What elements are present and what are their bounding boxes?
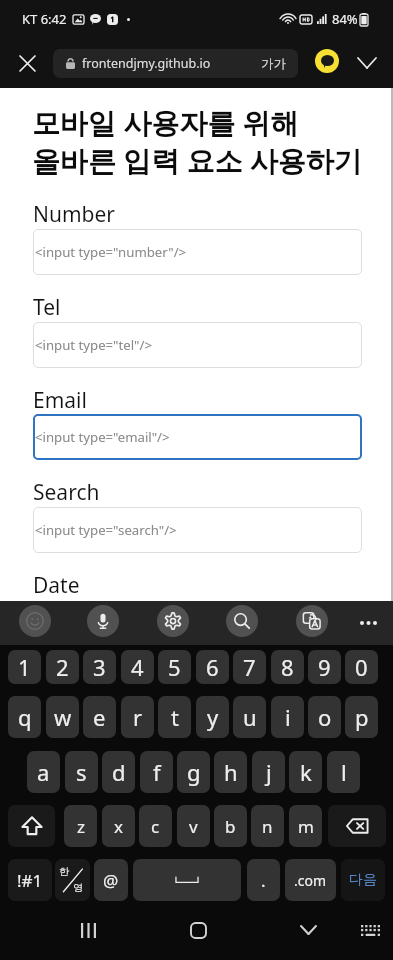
button[interactable]: g <box>177 751 210 793</box>
staticText: 4 <box>131 652 144 682</box>
button[interactable]: 6 <box>196 650 229 684</box>
button[interactable]: z <box>64 805 97 847</box>
staticText: 5 <box>168 652 181 682</box>
button[interactable]: Close <box>11 47 43 79</box>
button[interactable]: f <box>140 751 173 793</box>
button[interactable]: Search <box>226 605 258 637</box>
staticText: j <box>266 757 272 787</box>
staticText: z <box>77 815 85 838</box>
button[interactable]: Korean English toggle <box>55 859 90 901</box>
button[interactable]: s <box>65 751 98 793</box>
button[interactable]: 3 <box>83 650 116 684</box>
button[interactable]: v <box>177 805 210 847</box>
staticText: 8 <box>281 652 294 682</box>
staticText: KT 6:42 <box>22 10 67 28</box>
button[interactable]: o <box>308 696 341 738</box>
button[interactable]: Home <box>176 908 220 952</box>
button[interactable]: frontendjmy.github.io <box>53 49 298 78</box>
staticText: g <box>187 757 201 787</box>
staticText: !#1 <box>17 869 43 892</box>
button[interactable]: Recent apps <box>66 908 110 952</box>
staticText: . <box>261 869 266 892</box>
staticText: y <box>207 702 219 732</box>
staticText: <input type="search"/> <box>35 521 177 539</box>
staticText: i <box>285 702 291 732</box>
button[interactable]: q <box>8 696 41 738</box>
button[interactable]: c <box>139 805 172 847</box>
button[interactable]: 7 <box>233 650 266 684</box>
button[interactable]: l <box>327 751 360 793</box>
button[interactable]: @ <box>94 859 128 901</box>
staticText: l <box>341 757 347 787</box>
button[interactable]: j <box>252 751 285 793</box>
staticText: f <box>153 757 161 787</box>
button[interactable]: Emoji <box>19 605 51 637</box>
staticText: h <box>224 757 238 787</box>
button[interactable]: u <box>233 696 266 738</box>
button[interactable]: Chat <box>315 49 339 73</box>
staticText: t <box>171 702 179 732</box>
button[interactable]: w <box>46 696 79 738</box>
staticText: r <box>133 702 143 732</box>
button[interactable]: a <box>27 751 60 793</box>
button[interactable]: x <box>102 805 135 847</box>
button[interactable]: e <box>83 696 116 738</box>
button[interactable]: k <box>289 751 322 793</box>
button[interactable]: 9 <box>308 650 341 684</box>
button[interactable]: Voice input <box>87 605 119 637</box>
button[interactable]: p <box>345 696 378 738</box>
button[interactable]: Backspace <box>328 805 386 847</box>
staticText: 영 <box>73 881 83 894</box>
button[interactable]: 다음 <box>341 859 385 901</box>
button[interactable]: 0 <box>345 650 378 684</box>
button[interactable]: 5 <box>158 650 191 684</box>
button[interactable]: r <box>121 696 154 738</box>
button[interactable]: . <box>247 859 280 901</box>
button[interactable]: t <box>158 696 191 738</box>
staticText: 0 <box>355 652 368 682</box>
button[interactable]: n <box>251 805 284 847</box>
button[interactable]: Translate <box>296 605 328 637</box>
button[interactable]: More <box>351 47 383 79</box>
button[interactable]: 4 <box>121 650 154 684</box>
button[interactable]: <input type="search"/> <box>33 507 362 553</box>
staticText: Email <box>33 386 87 415</box>
button[interactable]: h <box>214 751 247 793</box>
button[interactable]: Hide keyboard <box>286 908 330 952</box>
staticText: 84% <box>332 10 358 28</box>
button[interactable]: 8 <box>271 650 304 684</box>
button[interactable]: <input type="number"/> <box>33 229 362 275</box>
button[interactable]: <input type="email"/> <box>33 414 362 460</box>
staticText: @ <box>103 869 119 892</box>
button[interactable]: y <box>196 696 229 738</box>
staticText: e <box>93 702 106 732</box>
button[interactable]: .com <box>285 859 336 901</box>
button[interactable]: 1 <box>8 650 41 684</box>
staticText: Date <box>33 571 80 600</box>
button[interactable]: <input type="tel"/> <box>33 322 362 368</box>
staticText: <input type="tel"/> <box>35 336 152 354</box>
button[interactable]: Space <box>133 859 241 901</box>
button[interactable]: m <box>289 805 322 847</box>
button[interactable]: b <box>214 805 247 847</box>
staticText: u <box>243 702 257 732</box>
staticText: .com <box>294 871 327 890</box>
staticText: 2 <box>56 652 69 682</box>
button[interactable]: !#1 <box>8 859 52 901</box>
button[interactable]: Change keyboard <box>348 908 392 952</box>
button[interactable]: Settings <box>157 605 189 637</box>
staticText: 9 <box>318 652 331 682</box>
staticText: q <box>18 702 32 732</box>
button[interactable]: More options <box>352 607 384 639</box>
staticText: 7 <box>243 652 256 682</box>
button[interactable]: i <box>271 696 304 738</box>
staticText: w <box>54 702 72 732</box>
staticText: m <box>298 815 314 838</box>
staticText: Number <box>33 200 116 229</box>
staticText: 1 <box>18 652 31 682</box>
staticText: n <box>262 815 273 838</box>
button[interactable]: 2 <box>46 650 79 684</box>
button[interactable]: Shift <box>8 805 55 847</box>
button[interactable]: d <box>102 751 135 793</box>
staticText: <input type="email"/> <box>35 428 170 446</box>
